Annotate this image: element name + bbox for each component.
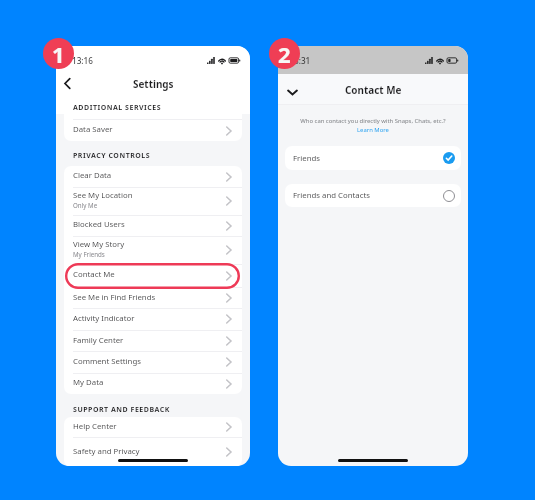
button[interactable]: Family Center [64, 330, 242, 352]
staticText: Blocked Users [73, 219, 125, 230]
staticText: 8:31 [294, 55, 311, 66]
button[interactable]: See My Location [64, 187, 242, 215]
staticText: Only Me [73, 201, 98, 209]
staticText: My Data [73, 377, 104, 388]
button[interactable]: Blocked Users [64, 215, 242, 236]
button[interactable]: Help Center [64, 417, 242, 437]
button[interactable]: Back [56, 72, 79, 95]
button[interactable]: Comment Settings [64, 351, 242, 373]
staticText: SUPPORT AND FEEDBACK [73, 405, 171, 415]
staticText: Activity Indicator [73, 313, 135, 324]
button[interactable]: Activity Indicator [64, 308, 242, 330]
staticText: Safety and Privacy [73, 446, 140, 457]
staticText: Contact Me [345, 83, 402, 96]
button[interactable]: See Me in Find Friends [64, 287, 242, 309]
staticText: View My Story [73, 239, 125, 250]
staticText: My Friends [73, 250, 105, 258]
staticText: PRIVACY CONTROLS [73, 151, 151, 161]
staticText: Settings [133, 77, 174, 90]
button[interactable]: Safety and Privacy [64, 437, 242, 466]
button[interactable]: My Data [64, 373, 242, 394]
staticText: 2 [278, 39, 291, 69]
button[interactable]: Close [281, 81, 304, 104]
staticText: Comment Settings [73, 356, 141, 367]
staticText: 13:16 [72, 55, 93, 66]
staticText: See My Location [73, 190, 133, 201]
staticText: Who can contact you directly with Snaps,… [300, 117, 446, 125]
button[interactable]: View My Story [64, 236, 242, 264]
staticText: Contact Me [73, 269, 115, 280]
staticText: ADDITIONAL SERVICES [73, 103, 162, 113]
staticText: Friends [293, 153, 443, 164]
button[interactable]: Friends [285, 146, 461, 170]
staticText: Friends and Contacts [293, 190, 443, 201]
button[interactable]: Contact Me [64, 264, 242, 287]
staticText: Clear Data [73, 170, 112, 181]
staticText: Help Center [73, 421, 117, 432]
staticText: 1 [52, 39, 65, 69]
staticText: Family Center [73, 335, 124, 346]
button[interactable]: Data Saver [64, 120, 242, 141]
button[interactable]: Clear Data [64, 166, 242, 187]
staticText: Data Saver [73, 124, 113, 135]
button[interactable]: Learn More [357, 126, 389, 134]
button[interactable]: Friends and Contacts [285, 184, 461, 207]
staticText: See Me in Find Friends [73, 292, 156, 303]
